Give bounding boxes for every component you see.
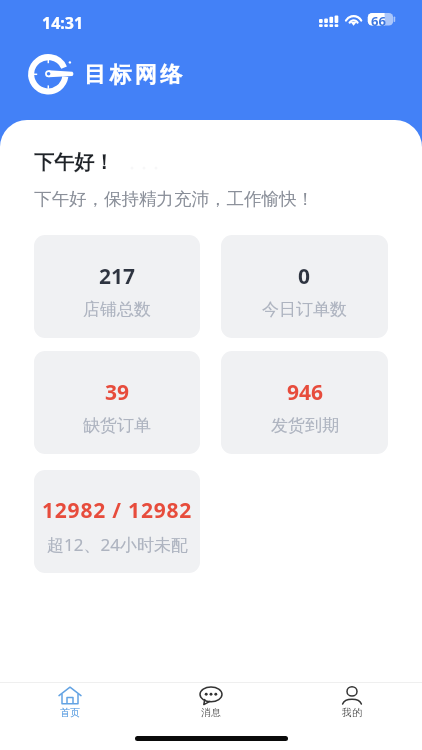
button[interactable]: 946 — [221, 351, 388, 454]
button[interactable]: 消息 — [140, 686, 281, 719]
staticText: 下午好，保持精力充沛，工作愉快！ — [34, 188, 314, 210]
button[interactable]: 12982 / 12982 — [34, 470, 200, 573]
button[interactable]: 首页 — [0, 686, 140, 719]
staticText: 首页 — [60, 706, 80, 719]
staticText: 66 — [371, 12, 386, 30]
button[interactable]: 我的 — [281, 686, 422, 719]
staticText: 217 — [99, 262, 136, 291]
button[interactable]: 217 — [34, 235, 200, 338]
staticText: 目标网络 — [84, 61, 186, 89]
staticText: 今日订单数 — [262, 299, 347, 320]
staticText: 我的 — [342, 706, 362, 719]
staticText: 超12、24小时未配 — [47, 533, 188, 556]
staticText: 14:31 — [42, 12, 84, 34]
staticText: 12982 / 12982 — [42, 496, 193, 525]
staticText: 店铺总数 — [83, 299, 151, 320]
button[interactable]: 39 — [34, 351, 200, 454]
staticText: 0 — [298, 262, 311, 291]
staticText: 发货到期 — [271, 415, 339, 436]
staticText: 下午好！ — [34, 150, 114, 175]
button[interactable]: 0 — [221, 235, 388, 338]
staticText: 缺货订单 — [83, 415, 151, 436]
staticText: 39 — [105, 378, 130, 407]
staticText: 消息 — [201, 706, 221, 719]
staticText: 946 — [287, 378, 324, 407]
